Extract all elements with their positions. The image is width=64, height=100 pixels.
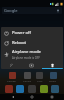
button[interactable]: Gallery [50,72,57,79]
other: Power off [4,31,9,36]
staticText: Clock [37,80,43,83]
button[interactable]: Calendar [9,72,16,79]
staticText: Reboot [12,40,27,46]
staticText: Airplane mode is OFF [12,56,40,60]
other: Airplane mode [4,52,9,57]
button[interactable]: Power off [1,28,63,38]
other: Voice search [56,9,60,13]
button[interactable]: Airplane mode [1,48,63,60]
button[interactable]: Google [2,7,62,14]
other: Reboot [4,41,9,46]
button[interactable]: Phone [5,85,13,93]
button[interactable]: Camera [24,72,31,79]
button[interactable]: Quick settings [1,61,21,69]
staticText: Calendar [7,80,17,83]
button[interactable]: Screenshot [21,61,42,69]
staticText: Airplane mode [12,49,41,55]
staticText: Google [4,8,18,13]
button[interactable]: Messages [16,85,24,93]
button[interactable]: Settings [51,85,59,93]
button[interactable]: Power menu [42,61,63,69]
button[interactable]: Browser [40,85,48,93]
button[interactable]: Back [6,94,20,100]
button[interactable]: Reboot [1,38,63,48]
button[interactable]: Home [25,94,39,100]
button[interactable]: Apps [28,85,36,93]
staticText: Power off [12,30,31,36]
staticText: Gallery [49,80,57,83]
staticText: Camera [23,80,31,83]
button[interactable]: Recents [45,94,59,100]
